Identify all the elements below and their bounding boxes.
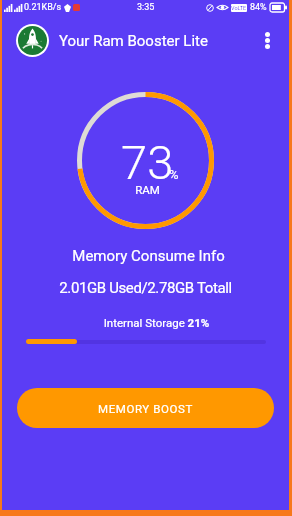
staticText: Internal Storage 21%	[13, 316, 292, 329]
staticText: Your Ram Booster Lite	[59, 32, 208, 50]
staticText: VoLTE	[231, 5, 247, 11]
staticText: RAM	[4, 183, 291, 196]
staticText: Memory Consume Info	[5, 247, 292, 265]
staticText: MEMORY BOOST	[98, 402, 193, 415]
staticText: 3:35	[137, 2, 155, 13]
staticText: 73	[121, 135, 174, 190]
staticText: 84%	[250, 2, 267, 13]
staticText: 0.21KB/s	[24, 2, 62, 13]
button[interactable]: MEMORY BOOST	[17, 388, 274, 428]
staticText: 2.01GB Used/2.78GB Totall	[2, 279, 289, 297]
button[interactable]: More options	[251, 24, 283, 56]
staticText: %	[169, 167, 179, 182]
